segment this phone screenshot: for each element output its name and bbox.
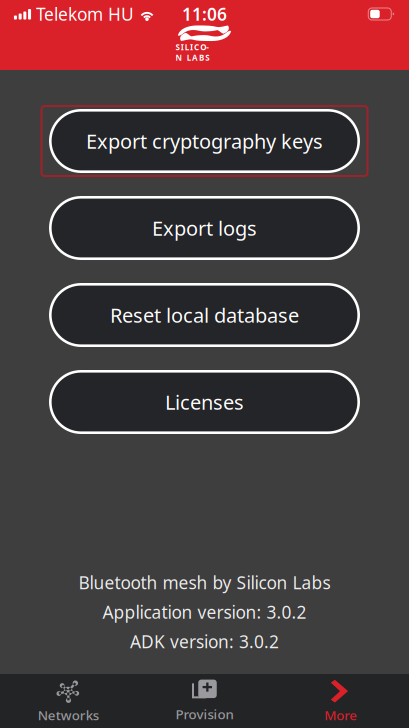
button[interactable]: Networks (0, 674, 136, 728)
staticText: More (324, 706, 357, 724)
staticText: Networks (38, 706, 99, 724)
button[interactable]: Provision (136, 674, 273, 728)
staticText: Licenses (165, 389, 244, 415)
staticText: Provision (175, 705, 233, 723)
button[interactable]: Export logs (49, 196, 360, 260)
button[interactable]: Reset local database (49, 283, 360, 347)
staticText: ADK version: 3.0.2 (130, 630, 279, 653)
staticText: 11:06 (182, 2, 227, 25)
staticText: SILICON LABS (175, 42, 214, 63)
button[interactable]: Licenses (49, 370, 360, 434)
staticText: Export logs (152, 215, 257, 241)
staticText: Reset local database (110, 302, 299, 328)
staticText: Bluetooth mesh by Silicon Labs (78, 571, 330, 594)
staticText: Telekom HU (36, 2, 134, 25)
button[interactable]: Export cryptography keys (49, 109, 360, 173)
button[interactable]: More (273, 674, 409, 728)
staticText: Export cryptography keys (86, 128, 323, 154)
staticText: Application version: 3.0.2 (102, 600, 306, 623)
